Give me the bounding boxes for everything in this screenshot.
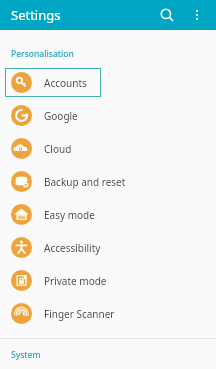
button[interactable]: Search (154, 2, 180, 28)
staticText: Google (44, 109, 78, 123)
button[interactable]: Finger Scanner (0, 297, 216, 330)
button[interactable]: More options (184, 2, 210, 28)
staticText: Private mode (44, 274, 107, 288)
button[interactable]: Cloud (0, 132, 216, 165)
staticText: System (11, 349, 41, 361)
button[interactable]: Google (0, 99, 216, 132)
staticText: Easy mode (44, 208, 95, 222)
staticText: Accounts (44, 76, 87, 90)
staticText: Backup and reset (44, 175, 126, 189)
staticText: Finger Scanner (44, 307, 115, 321)
staticText: Settings (11, 6, 61, 24)
staticText: Accessibility (44, 241, 101, 255)
button[interactable]: Private mode (0, 264, 216, 297)
button[interactable]: Accounts (0, 66, 216, 99)
staticText: Personalisation (11, 48, 74, 60)
button[interactable]: Easy mode (0, 198, 216, 231)
staticText: Cloud (44, 142, 72, 156)
button[interactable]: Accessibility (0, 231, 216, 264)
button[interactable]: Backup and reset (0, 165, 216, 198)
